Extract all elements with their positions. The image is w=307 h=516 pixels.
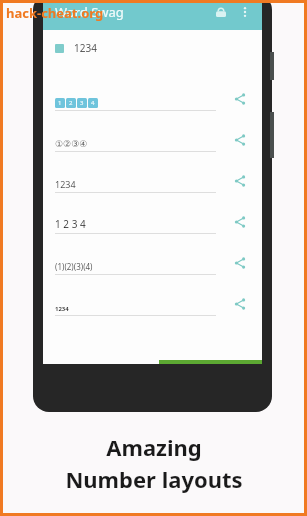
staticText: 1 — [58, 99, 62, 107]
button[interactable]: Share — [230, 171, 250, 191]
button[interactable]: More options — [234, 1, 256, 23]
staticText: 4 — [91, 99, 95, 107]
staticText: 1234 — [74, 41, 97, 55]
button[interactable]: Share — [230, 212, 250, 232]
staticText: Word Swag — [55, 3, 124, 21]
button[interactable]: 1234 — [43, 30, 262, 66]
button[interactable]: 1234 — [43, 279, 262, 320]
button[interactable]: Lock — [210, 1, 232, 23]
staticText: 3 — [80, 99, 84, 107]
staticText: hack-cheat.org — [6, 4, 104, 22]
staticText: 1234 — [55, 305, 69, 313]
staticText: Number layouts — [65, 464, 243, 494]
button[interactable]: (1)(2)(3)(4) — [43, 238, 262, 279]
staticText: 1 2 3 4 — [55, 217, 86, 231]
button[interactable]: 1 — [43, 74, 262, 115]
button[interactable]: Share — [230, 130, 250, 150]
staticText: ①②③④ — [55, 139, 88, 149]
button[interactable]: Share — [230, 294, 250, 314]
button[interactable]: Share — [230, 89, 250, 109]
button[interactable]: 1 2 3 4 — [43, 197, 262, 238]
button[interactable]: ①②③④ — [43, 115, 262, 156]
staticText: 2 — [69, 99, 73, 107]
button[interactable]: Share — [230, 253, 250, 273]
button[interactable]: 1234 — [43, 156, 262, 197]
staticText: (1)(2)(3)(4) — [55, 261, 93, 272]
staticText: 1234 — [55, 178, 76, 190]
staticText: Amazing — [106, 432, 202, 462]
